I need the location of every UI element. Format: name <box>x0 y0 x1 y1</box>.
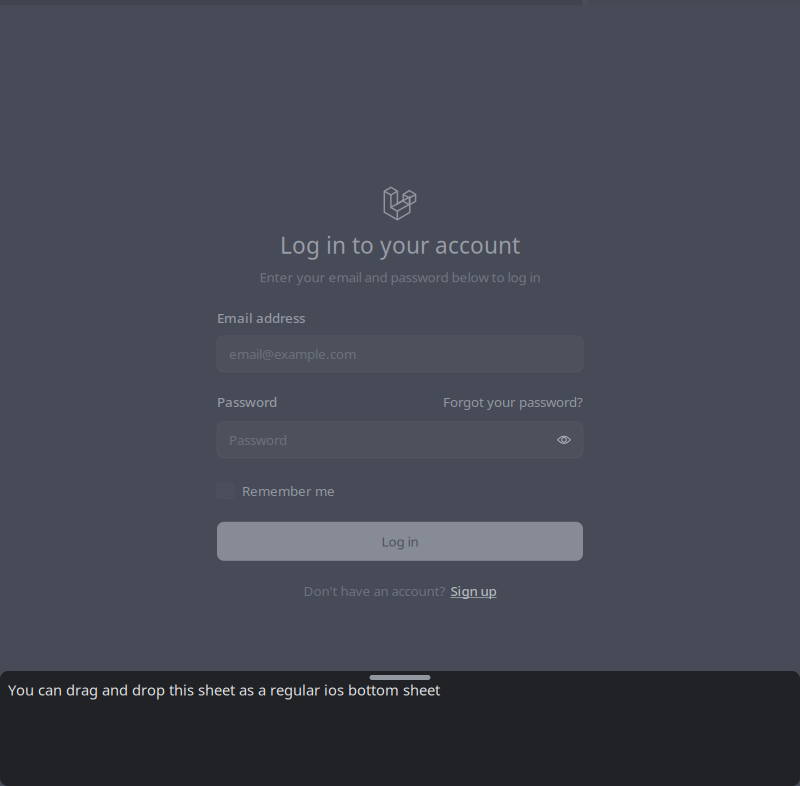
staticText: Enter your email and password below to l… <box>259 268 540 286</box>
staticText: Password <box>229 431 287 449</box>
button[interactable]: Remember me <box>217 483 583 499</box>
button[interactable]: Forgot your password? <box>443 393 583 411</box>
staticText: email@example.com <box>229 345 356 363</box>
button[interactable]: Log in <box>217 522 583 561</box>
staticText: Forgot your password? <box>443 393 583 411</box>
staticText: Log in <box>381 532 418 550</box>
staticText: Email address <box>217 309 305 327</box>
button[interactable]: email@example.com <box>217 336 583 372</box>
staticText: Password <box>217 393 277 411</box>
staticText: You can drag and drop this sheet as a re… <box>8 680 440 699</box>
button[interactable]: Drag to resize sheet <box>369 671 430 680</box>
button[interactable]: Password <box>217 422 545 458</box>
button[interactable]: Sign up <box>450 582 496 600</box>
button[interactable]: Show password <box>545 422 583 458</box>
staticText: Remember me <box>242 482 335 500</box>
staticText: Don't have an account? <box>303 582 445 600</box>
staticText: Log in to your account <box>280 230 520 260</box>
staticText: Sign up <box>450 582 496 600</box>
